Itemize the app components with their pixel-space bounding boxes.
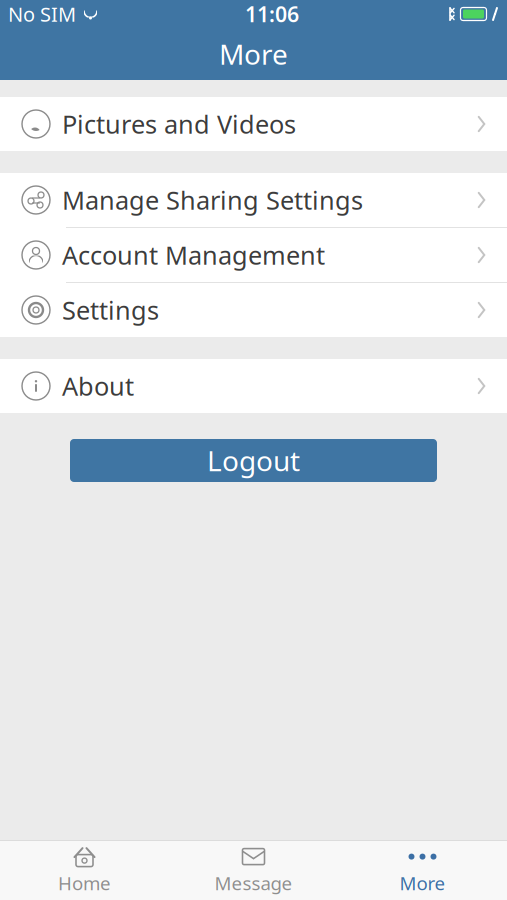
staticText: More: [399, 871, 445, 895]
button[interactable]: About: [0, 359, 507, 413]
button[interactable]: Message: [169, 841, 338, 900]
staticText: Logout: [207, 442, 300, 479]
button[interactable]: More: [338, 841, 507, 900]
button[interactable]: Settings: [0, 283, 507, 337]
button[interactable]: Home: [0, 841, 169, 900]
button[interactable]: Pictures and Videos: [0, 97, 507, 151]
button[interactable]: Logout: [70, 439, 437, 482]
staticText: Settings: [62, 293, 159, 327]
staticText: No SIM: [8, 1, 76, 27]
staticText: About: [62, 369, 134, 403]
staticText: Home: [58, 871, 111, 895]
staticText: Account Management: [62, 238, 325, 272]
staticText: Pictures and Videos: [62, 107, 296, 141]
staticText: Message: [214, 871, 292, 895]
staticText: More: [219, 35, 288, 73]
staticText: 11:06: [245, 0, 299, 28]
button[interactable]: Account Management: [0, 228, 507, 282]
staticText: Manage Sharing Settings: [62, 183, 363, 217]
button[interactable]: Manage Sharing Settings: [0, 173, 507, 227]
